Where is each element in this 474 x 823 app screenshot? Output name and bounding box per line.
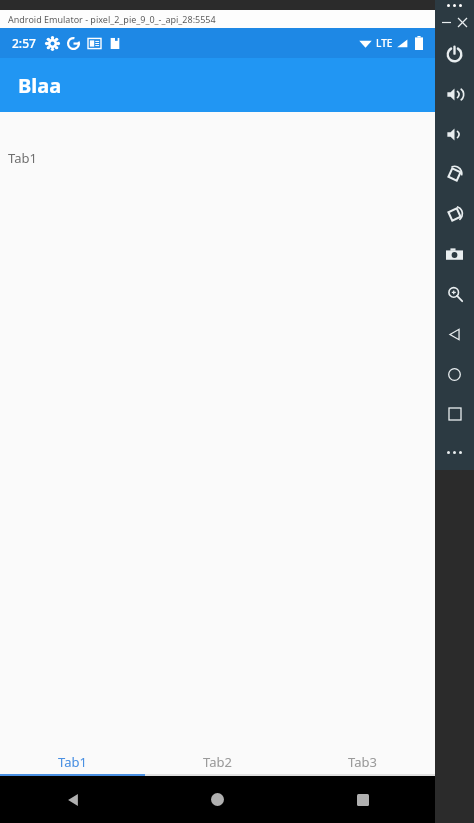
button[interactable]: Power (435, 34, 474, 74)
button[interactable]: Home (145, 776, 290, 823)
staticText: Tab1 (58, 753, 87, 771)
staticText: 2:57 (12, 35, 36, 51)
staticText: LTE (376, 36, 393, 50)
button[interactable]: Home (435, 354, 474, 394)
button[interactable]: Tab2 (145, 750, 290, 774)
staticText: Android Emulator - pixel_2_pie_9_0_-_api… (8, 13, 216, 25)
button[interactable]: Tab1 (0, 750, 145, 774)
staticText: Tab3 (348, 753, 377, 771)
button[interactable]: Screenshot (435, 234, 474, 274)
button[interactable]: More (435, 434, 474, 470)
button[interactable]: Tab3 (290, 750, 435, 774)
staticText: Tab1 (8, 149, 37, 167)
staticText: Blaa (18, 72, 62, 99)
button[interactable]: Volume up (435, 74, 474, 114)
button[interactable]: Back (0, 776, 145, 823)
button[interactable]: Recents (290, 776, 435, 823)
button[interactable]: Rotate right (435, 194, 474, 234)
button[interactable]: Rotate left (435, 154, 474, 194)
button[interactable]: Volume down (435, 114, 474, 154)
button[interactable]: Back (435, 314, 474, 354)
staticText: Tab2 (203, 753, 232, 771)
button[interactable]: Zoom (435, 274, 474, 314)
button[interactable]: Overview (435, 394, 474, 434)
